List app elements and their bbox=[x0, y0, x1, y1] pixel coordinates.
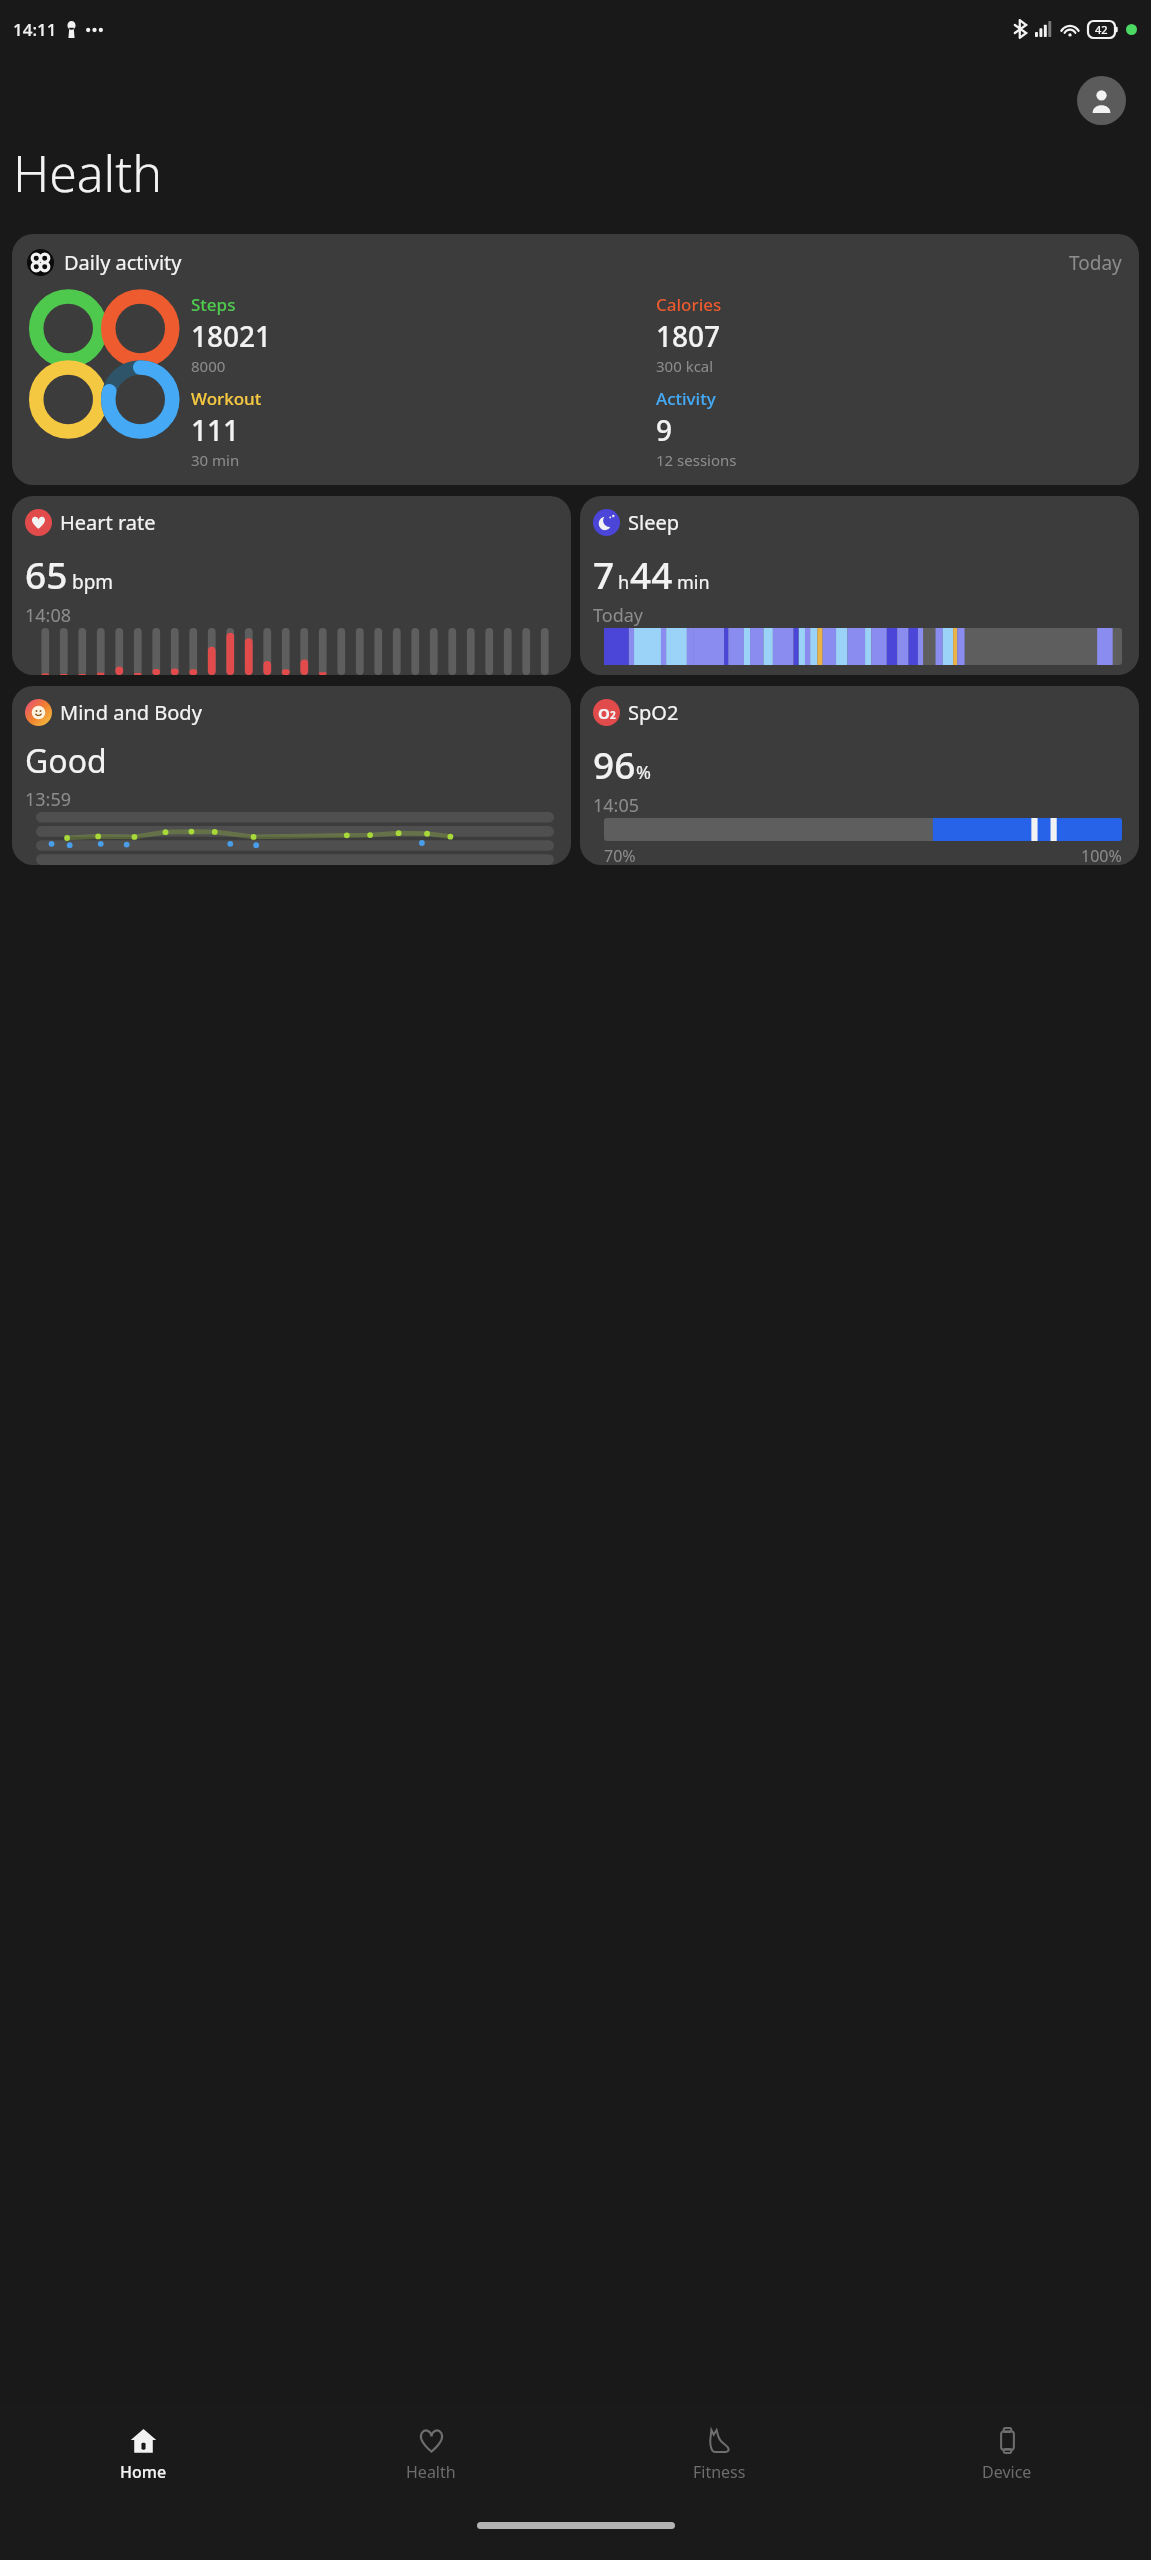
staticText: 100% bbox=[1081, 845, 1122, 865]
staticText: Home bbox=[120, 2461, 167, 2483]
staticText: 14:05 bbox=[593, 793, 640, 818]
button[interactable]: Heart rate bbox=[12, 496, 571, 675]
staticText: Activity bbox=[656, 387, 716, 410]
staticText: Today bbox=[1069, 250, 1122, 276]
staticText: 14:08 bbox=[25, 603, 72, 628]
button[interactable]: Fitness bbox=[575, 2406, 863, 2503]
staticText: 300 kcal bbox=[656, 356, 714, 376]
button[interactable]: Daily activity bbox=[12, 234, 1139, 485]
staticText: Mind and Body bbox=[60, 699, 202, 726]
staticText: 12 sessions bbox=[656, 450, 737, 470]
staticText: h bbox=[618, 570, 630, 595]
staticText: SpO2 bbox=[628, 699, 679, 726]
staticText: % bbox=[636, 760, 651, 785]
staticText: 2 bbox=[610, 708, 616, 722]
staticText: Today bbox=[593, 603, 643, 628]
button[interactable]: Home bbox=[0, 2406, 287, 2503]
staticText: Device bbox=[982, 2461, 1032, 2483]
staticText: Good bbox=[25, 739, 107, 783]
staticText: 1807 bbox=[656, 317, 721, 355]
button[interactable]: Profile bbox=[1077, 76, 1126, 125]
staticText: 30 min bbox=[191, 450, 240, 470]
staticText: O bbox=[598, 703, 610, 723]
staticText: Sleep bbox=[628, 509, 679, 536]
staticText: 7 bbox=[593, 549, 615, 599]
staticText: 9 bbox=[656, 411, 673, 449]
staticText: 8000 bbox=[191, 356, 226, 376]
staticText: Fitness bbox=[693, 2461, 746, 2483]
staticText: Steps bbox=[191, 293, 236, 316]
staticText: 111 bbox=[191, 411, 240, 449]
staticText: 42 bbox=[1095, 22, 1108, 37]
button[interactable]: Health bbox=[287, 2406, 575, 2503]
staticText: 70% bbox=[604, 845, 636, 865]
button[interactable]: O bbox=[580, 686, 1139, 865]
staticText: min bbox=[677, 570, 710, 595]
staticText: Heart rate bbox=[60, 509, 156, 536]
staticText: 13:59 bbox=[25, 787, 72, 812]
button[interactable]: Device bbox=[863, 2406, 1151, 2503]
staticText: 14:11 bbox=[13, 18, 57, 41]
staticText: Health bbox=[406, 2461, 456, 2483]
staticText: Calories bbox=[656, 293, 722, 316]
staticText: Daily activity bbox=[64, 249, 182, 276]
staticText: Health bbox=[13, 139, 162, 207]
staticText: 96 bbox=[593, 739, 636, 789]
button[interactable]: Sleep bbox=[580, 496, 1139, 675]
staticText: 65 bbox=[25, 549, 68, 599]
staticText: Workout bbox=[191, 387, 262, 410]
staticText: 18021 bbox=[191, 317, 272, 355]
staticText: 44 bbox=[630, 549, 673, 599]
staticText: bpm bbox=[72, 569, 114, 595]
button[interactable]: Mind and Body bbox=[12, 686, 571, 865]
